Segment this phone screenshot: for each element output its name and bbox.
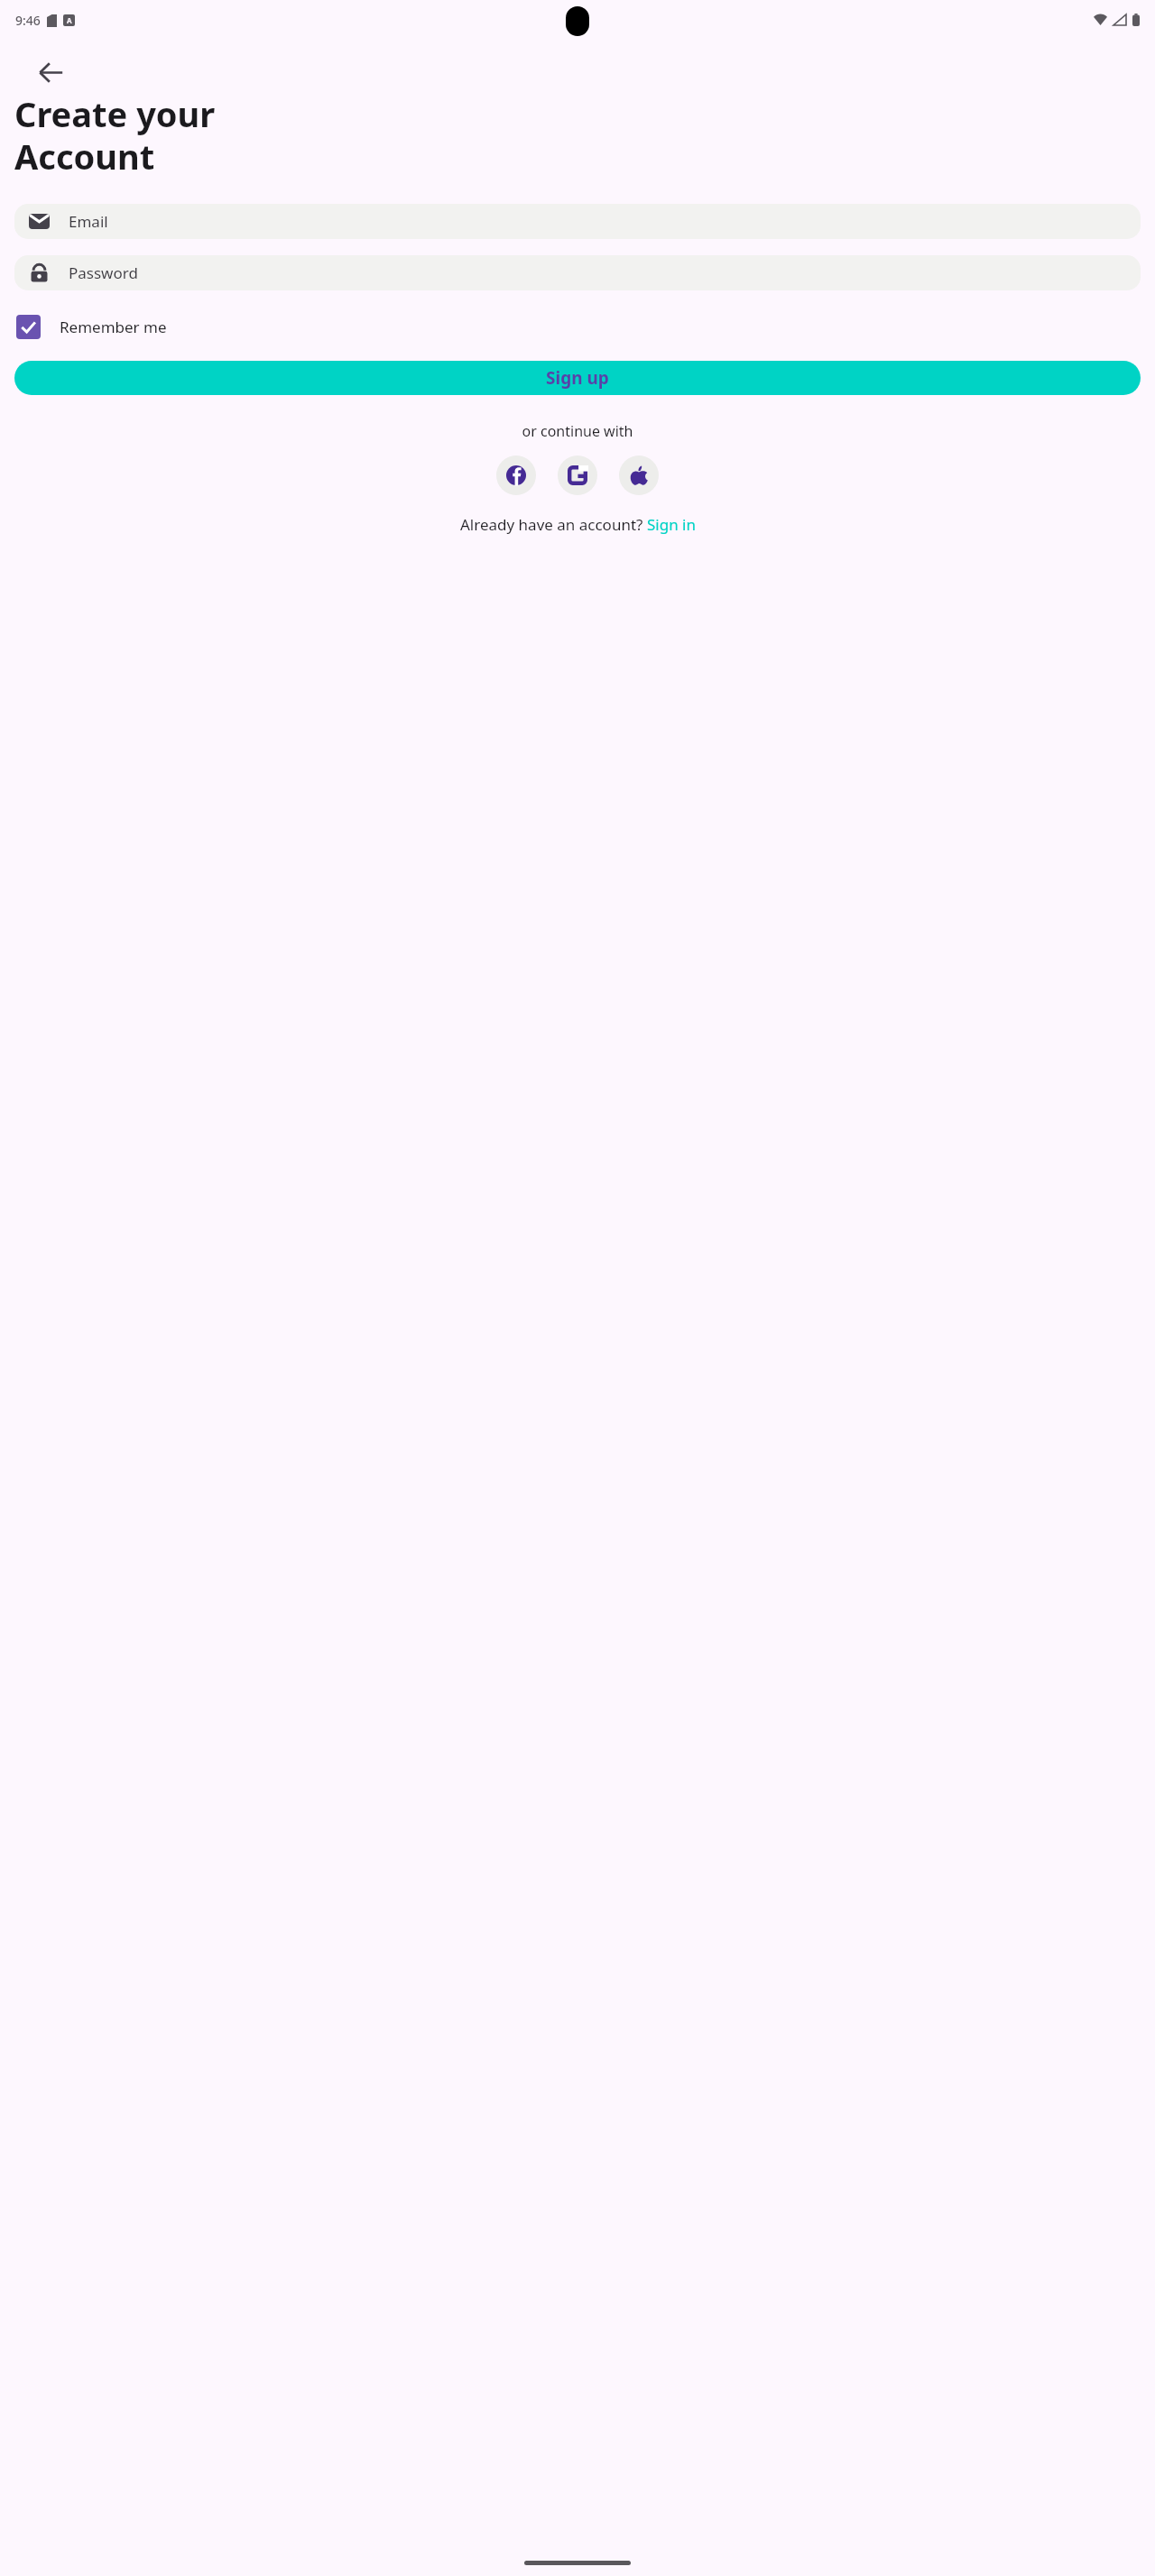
- button[interactable]: Sign in: [647, 514, 696, 535]
- button[interactable]: Password: [14, 255, 1141, 290]
- staticText: or continue with: [14, 421, 1141, 441]
- staticText: Create your Account: [14, 90, 216, 179]
- staticText: Password: [69, 262, 138, 283]
- button[interactable]: Back: [26, 48, 75, 97]
- staticText: Sign in: [647, 514, 696, 535]
- staticText: 9:46: [15, 12, 41, 29]
- button[interactable]: Email: [14, 204, 1141, 239]
- staticText: Sign up: [546, 366, 609, 390]
- staticText: Email: [69, 211, 108, 232]
- staticText: Already have an account?: [460, 514, 647, 535]
- button[interactable]: Sign up: [14, 361, 1141, 395]
- staticText: Remember me: [60, 317, 167, 337]
- button[interactable]: Remember me: [14, 310, 169, 344]
- button[interactable]: Sign up with Google: [558, 455, 597, 495]
- staticText: A: [67, 15, 72, 25]
- button[interactable]: Sign up with Facebook: [496, 455, 536, 495]
- button[interactable]: Sign up with Apple: [619, 455, 659, 495]
